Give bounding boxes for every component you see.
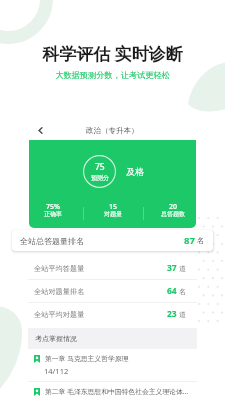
button[interactable]: 全站对题量排名 [28, 280, 197, 302]
staticText: 第二章 毛泽东思想和中国特色社会主义理论体... [45, 387, 189, 396]
staticText: 及格 [126, 166, 144, 177]
staticText: 15 [109, 202, 118, 212]
staticText: 对题量 [104, 210, 122, 218]
staticText: 37 [167, 262, 177, 274]
staticText: 名 [179, 287, 186, 296]
staticText: 第一章 马克思主义哲学原理 [45, 354, 129, 363]
staticText: 87 [184, 234, 195, 247]
staticText: 全站平均对题量 [34, 310, 167, 319]
staticText: 政治（专升本） [86, 126, 139, 135]
staticText: 全站总答题量排名 [20, 236, 184, 246]
staticText: 全站对题量排名 [34, 287, 167, 296]
staticText: 预测分 [91, 174, 109, 182]
staticText: 考点掌握情况 [35, 334, 77, 343]
staticText: 20 [169, 202, 178, 212]
staticText: 科学评估 实时诊断 [0, 42, 225, 65]
staticText: 正确率 [44, 210, 62, 218]
button[interactable]: 全站平均答题量 [28, 257, 197, 279]
staticText: 75% [46, 202, 60, 212]
staticText: 总答题数 [161, 210, 185, 218]
staticText: 名 [197, 236, 205, 245]
button[interactable]: 第二章 毛泽东思想和中国特色社会主义理论体... [28, 382, 197, 400]
staticText: 64 [167, 285, 177, 297]
staticText: 全站平均答题量 [34, 264, 167, 273]
button[interactable]: 全站平均对题量 [28, 303, 197, 325]
staticText: 23 [167, 308, 177, 320]
button[interactable]: 全站总答题量排名 [12, 230, 213, 251]
staticText: 75 [95, 161, 105, 173]
button[interactable]: 第一章 马克思主义哲学原理 [28, 349, 197, 381]
staticText: 道 [179, 264, 186, 273]
staticText: 道 [179, 310, 186, 319]
button[interactable]: Back [29, 121, 51, 140]
staticText: 大数据预测分数，让考试更轻松 [0, 70, 225, 80]
staticText: 14/112 [44, 366, 69, 376]
